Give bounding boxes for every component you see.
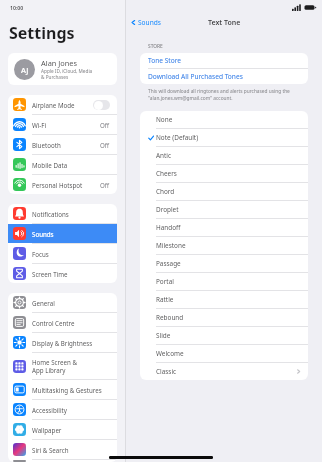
button[interactable]: Tone Store (140, 53, 308, 68)
button[interactable]: Slide (140, 327, 308, 344)
button[interactable]: General (8, 293, 117, 312)
staticText: Classic (156, 367, 296, 376)
staticText: None (156, 115, 301, 124)
staticText: Off (100, 121, 110, 129)
staticText: Chord (156, 187, 301, 196)
button[interactable]: Airplane Mode toggle (93, 100, 110, 110)
button[interactable]: Classic (140, 363, 308, 380)
staticText: Note (Default) (156, 133, 301, 142)
staticText: Sounds (32, 230, 54, 238)
staticText: Antic (156, 151, 301, 160)
staticText: Siri & Search (32, 446, 69, 454)
staticText: Tone Store (148, 56, 182, 65)
button[interactable]: Rebound (140, 309, 308, 326)
staticText: This will download all ringtones and ale… (148, 88, 290, 95)
button[interactable]: Siri & Search (8, 440, 117, 459)
staticText: Apple ID, iCloud, Media (41, 68, 93, 74)
staticText: Portal (156, 277, 301, 286)
staticText: Display & Brightness (32, 339, 93, 347)
staticText: Text Tone (208, 18, 241, 28)
button[interactable]: Download All Purchased Tones (140, 69, 308, 84)
button[interactable]: Rattle (140, 291, 308, 308)
staticText: Download All Purchased Tones (148, 72, 243, 81)
staticText: Droplet (156, 205, 301, 214)
button[interactable]: Apple Pencil (8, 460, 117, 462)
button[interactable]: Cheers (140, 165, 308, 182)
button[interactable]: Multitasking & Gestures (8, 380, 117, 399)
staticText: General (32, 299, 55, 307)
staticText: Wi-Fi (32, 121, 47, 129)
button[interactable]: Focus (8, 244, 117, 263)
button[interactable]: Wi-Fi (8, 115, 117, 134)
staticText: Handoff (156, 223, 301, 232)
staticText: Multitasking & Gestures (32, 386, 102, 394)
staticText: Mobile Data (32, 161, 68, 169)
button[interactable]: Sounds (8, 224, 117, 243)
button[interactable]: Chord (140, 183, 308, 200)
staticText: Bluetooth (32, 141, 61, 149)
button[interactable]: Droplet (140, 201, 308, 218)
button[interactable]: Antic (140, 147, 308, 164)
button[interactable]: Airplane Mode (8, 95, 117, 114)
staticText: App Library (32, 366, 66, 374)
staticText: Rebound (156, 313, 301, 322)
staticText: Screen Time (32, 270, 68, 278)
button[interactable]: Passage (140, 255, 308, 272)
staticText: Airplane Mode (32, 101, 75, 109)
button[interactable]: Display & Brightness (8, 333, 117, 352)
staticText: Sounds (138, 18, 161, 27)
button[interactable]: Notifications (8, 204, 117, 223)
staticText: Settings (9, 22, 75, 44)
staticText: "alan.jones.wm@gmail.com" account. (148, 95, 233, 102)
button[interactable]: Mobile Data (8, 155, 117, 174)
staticText: Passage (156, 259, 301, 268)
staticText: Welcome (156, 349, 301, 358)
button[interactable]: Personal Hotspot (8, 175, 117, 194)
staticText: Notifications (32, 210, 69, 218)
staticText: Wallpaper (32, 426, 62, 434)
staticText: Off (100, 141, 110, 149)
button[interactable]: Accessibility (8, 400, 117, 419)
staticText: Milestone (156, 241, 301, 250)
staticText: Alan Jones (41, 58, 78, 68)
staticText: AJ (21, 65, 29, 75)
staticText: Slide (156, 331, 301, 340)
staticText: Cheers (156, 169, 301, 178)
staticText: Personal Hotspot (32, 181, 83, 189)
staticText: STORE (148, 43, 163, 50)
staticText: Home Screen & (32, 358, 77, 366)
button[interactable]: None (140, 111, 308, 128)
button[interactable]: Note (Default) (140, 129, 308, 146)
staticText: Rattle (156, 295, 301, 304)
button[interactable]: Home Screen & (8, 353, 117, 379)
button[interactable]: Welcome (140, 345, 308, 362)
button[interactable]: Portal (140, 273, 308, 290)
button[interactable]: AJ (8, 53, 117, 85)
staticText: Control Centre (32, 319, 75, 327)
staticText: 10:00 (10, 4, 24, 11)
button[interactable]: Milestone (140, 237, 308, 254)
button[interactable]: Handoff (140, 219, 308, 236)
button[interactable]: Sounds (126, 16, 165, 29)
button[interactable]: Wallpaper (8, 420, 117, 439)
staticText: Off (100, 181, 110, 189)
staticText: Accessibility (32, 406, 67, 414)
staticText: Focus (32, 250, 49, 258)
button[interactable]: Bluetooth (8, 135, 117, 154)
staticText: & Purchases (41, 74, 69, 80)
button[interactable]: Screen Time (8, 264, 117, 283)
button[interactable]: Control Centre (8, 313, 117, 332)
